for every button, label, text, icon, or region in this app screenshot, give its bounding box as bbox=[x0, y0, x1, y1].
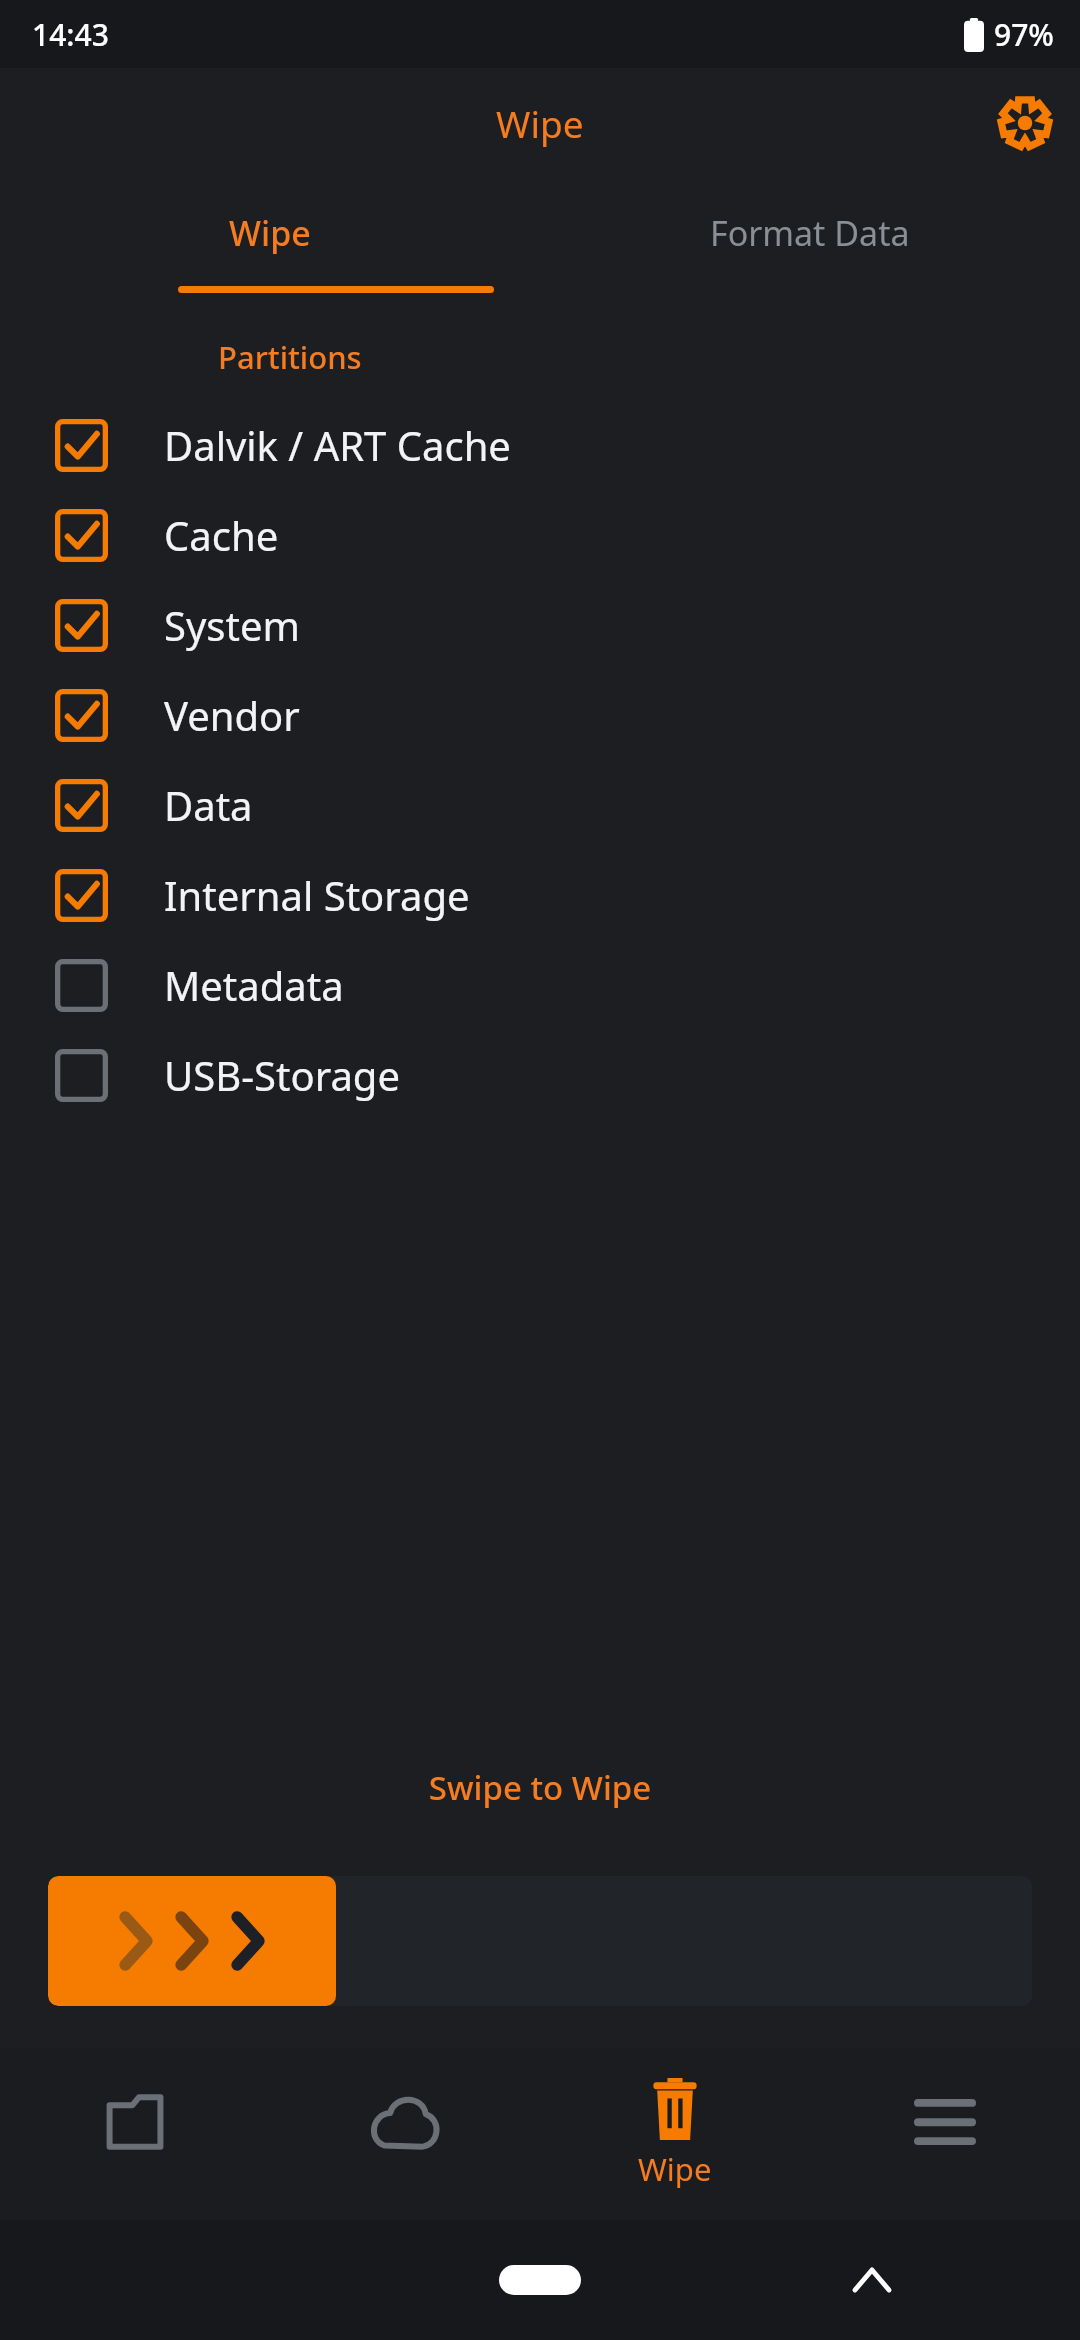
button[interactable]: USB-Storage bbox=[0, 1030, 1080, 1120]
staticText: Swipe to Wipe bbox=[0, 1765, 1080, 1810]
staticText: Metadata bbox=[164, 958, 344, 1012]
staticText: Internal Storage bbox=[164, 868, 470, 922]
staticText: Vendor bbox=[164, 688, 300, 742]
button[interactable]: Restore bbox=[270, 2048, 540, 2220]
staticText: Wipe bbox=[496, 98, 584, 148]
staticText: System bbox=[164, 598, 300, 652]
button[interactable]: Settings bbox=[992, 90, 1058, 156]
button[interactable]: Swipe to Wipe bbox=[48, 1876, 1032, 2006]
button[interactable]: Format Data bbox=[540, 178, 1080, 308]
staticText: Format Data bbox=[710, 210, 910, 256]
button[interactable]: Home bbox=[499, 2265, 581, 2295]
button[interactable]: Wipe bbox=[540, 2048, 810, 2220]
staticText: Dalvik / ART Cache bbox=[164, 418, 511, 472]
button[interactable]: Dalvik / ART Cache bbox=[0, 400, 1080, 490]
button[interactable]: Vendor bbox=[0, 670, 1080, 760]
button[interactable]: Data bbox=[0, 760, 1080, 850]
button[interactable]: Wipe bbox=[0, 178, 540, 308]
button[interactable]: Metadata bbox=[0, 940, 1080, 1030]
button[interactable]: Internal Storage bbox=[0, 850, 1080, 940]
staticText: 97% bbox=[994, 14, 1054, 55]
staticText: Partitions bbox=[218, 336, 362, 378]
button[interactable]: Backup bbox=[0, 2048, 270, 2220]
button[interactable]: Menu bbox=[810, 2048, 1080, 2220]
staticText: Wipe bbox=[229, 210, 311, 256]
staticText: USB-Storage bbox=[164, 1048, 400, 1102]
button[interactable]: Expand bbox=[844, 2252, 900, 2308]
staticText: Cache bbox=[164, 508, 279, 562]
staticText: 14:43 bbox=[32, 14, 109, 55]
button[interactable]: System bbox=[0, 580, 1080, 670]
staticText: Wipe bbox=[638, 2148, 712, 2190]
button[interactable]: Cache bbox=[0, 490, 1080, 580]
staticText: Data bbox=[164, 778, 253, 832]
